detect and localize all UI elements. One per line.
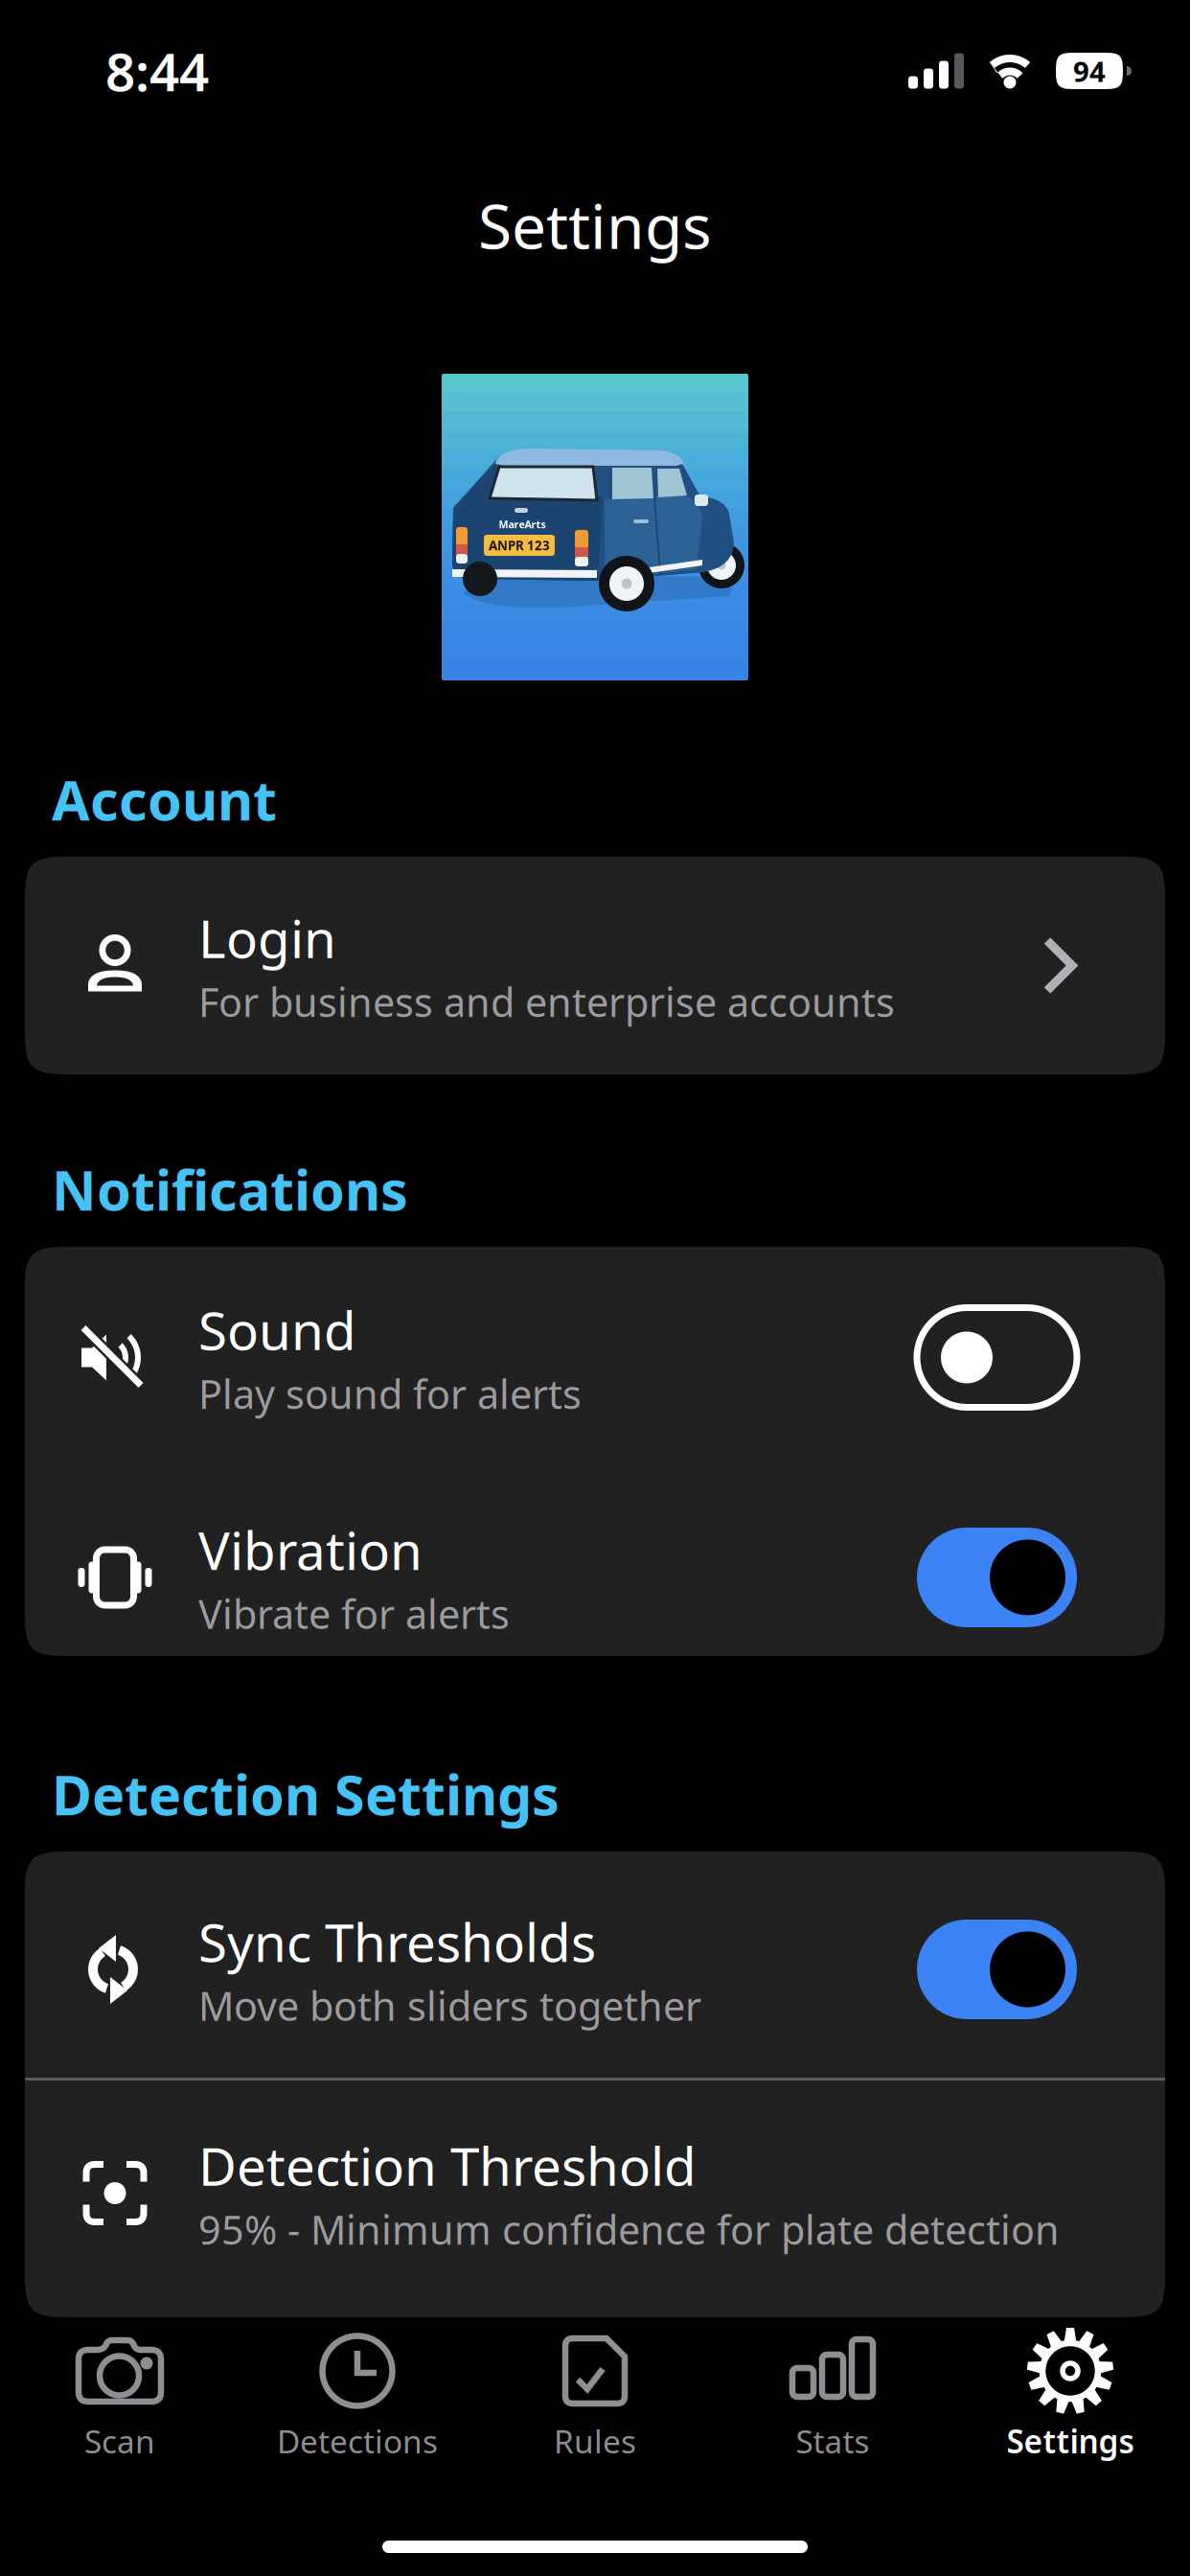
staticText: Vibration	[198, 1515, 423, 1585]
staticText: Settings	[478, 184, 712, 266]
staticText: Account	[52, 763, 277, 836]
button[interactable]: Stats	[714, 2316, 951, 2491]
button[interactable]: Sound	[25, 1247, 1165, 1468]
staticText: Stats	[796, 2420, 870, 2462]
staticText: Play sound for alerts	[198, 1367, 582, 1420]
staticText: Move both sliders together	[198, 1979, 701, 2032]
staticText: Settings	[1007, 2420, 1134, 2462]
staticText: 8:44	[105, 36, 209, 106]
staticText: Notifications	[52, 1153, 408, 1226]
button[interactable]: Vibration	[25, 1468, 1165, 1656]
staticText: Scan	[84, 2420, 155, 2462]
staticText: MareArts	[499, 517, 546, 531]
staticText: Detection Settings	[52, 1757, 560, 1830]
staticText: ANPR 123	[489, 537, 550, 554]
button[interactable]: Rules	[476, 2316, 714, 2491]
staticText: Rules	[554, 2420, 636, 2462]
button[interactable]: Sync Thresholds	[25, 1851, 1165, 2078]
staticText: 94	[1073, 52, 1106, 90]
staticText: Vibrate for alerts	[198, 1587, 510, 1640]
staticText: For business and enterprise accounts	[198, 975, 895, 1028]
button[interactable]: Scan	[1, 2316, 239, 2491]
staticText: Detections	[277, 2420, 438, 2462]
staticText: Login	[198, 903, 336, 973]
staticText: Detection Threshold	[198, 2131, 697, 2200]
button[interactable]: Login	[25, 857, 1165, 1074]
button[interactable]: Settings	[951, 2316, 1189, 2491]
staticText: Sound	[198, 1295, 356, 1365]
button[interactable]: Detections	[239, 2316, 476, 2491]
button[interactable]: Detection Threshold	[25, 2081, 1165, 2317]
staticText: Sync Thresholds	[198, 1907, 596, 1976]
staticText: 95% - Minimum confidence for plate detec…	[198, 2203, 1060, 2256]
